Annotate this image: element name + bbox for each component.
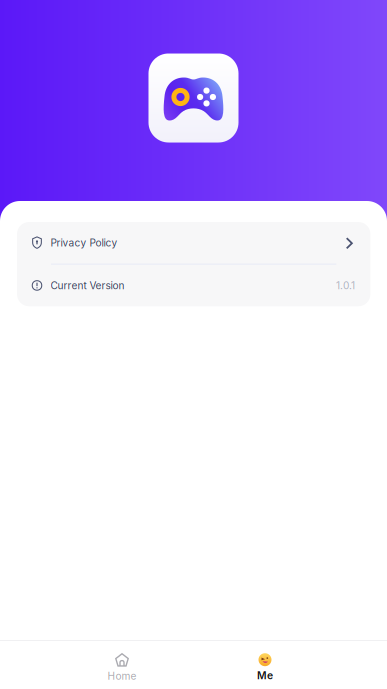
button[interactable]: Home	[50, 641, 193, 689]
staticText: Privacy Policy	[51, 237, 118, 249]
staticText: Current Version	[51, 279, 125, 292]
button[interactable]: Current Version	[17, 265, 370, 306]
staticText: Me	[257, 669, 273, 682]
button[interactable]: Privacy Policy	[17, 222, 370, 263]
staticText: 1.0.1	[336, 279, 355, 292]
staticText: Home	[107, 670, 136, 682]
button[interactable]: Me	[193, 641, 336, 689]
